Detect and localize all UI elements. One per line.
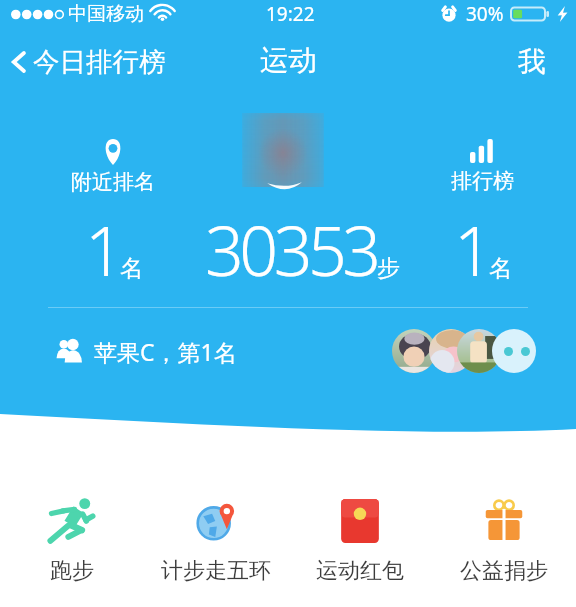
button[interactable]: 今日排行榜 <box>0 37 180 86</box>
button[interactable]: 公益捐步 <box>432 492 576 585</box>
staticText: 公益捐步 <box>460 557 548 585</box>
staticText: 步 <box>377 254 400 283</box>
staticText: 跑步 <box>50 557 94 585</box>
button[interactable]: 排行榜 <box>432 139 532 194</box>
staticText: 计步走五环 <box>161 557 271 585</box>
staticText: 名 <box>489 254 512 283</box>
staticText: 30353 <box>205 203 377 296</box>
button[interactable]: 计步走五环 <box>144 492 288 585</box>
staticText: 运动红包 <box>316 557 404 585</box>
staticText: 今日排行榜 <box>33 45 166 78</box>
button[interactable]: 苹果C，第1名 <box>0 320 576 382</box>
staticText: 30% <box>466 1 504 27</box>
staticText: 附近排名 <box>71 169 155 195</box>
button[interactable]: 附近排名 <box>63 139 163 195</box>
staticText: 排行榜 <box>451 168 514 194</box>
staticText: 名 <box>120 254 143 283</box>
staticText: 1 <box>85 203 120 296</box>
staticText: 苹果C，第1名 <box>94 336 237 367</box>
button[interactable]: 运动红包 <box>288 492 432 585</box>
button[interactable]: 跑步 <box>0 492 144 585</box>
button[interactable]: 我 <box>494 36 576 87</box>
staticText: 1 <box>454 203 489 296</box>
button[interactable]: 运动 <box>246 35 331 87</box>
staticText: 19:22 <box>266 1 315 27</box>
staticText: 中国移动 <box>68 2 144 26</box>
